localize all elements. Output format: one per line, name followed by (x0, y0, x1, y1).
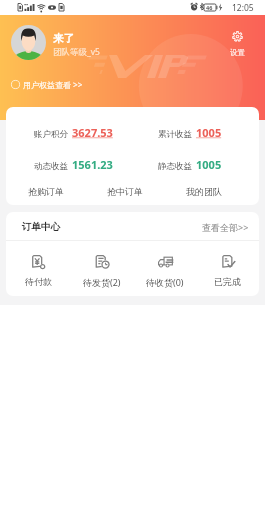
button[interactable]: 待收货(0) (133, 250, 196, 292)
staticText: 1005 (196, 157, 222, 172)
button[interactable]: 设置 (227, 31, 247, 57)
staticText: 待发货(2) (83, 276, 121, 288)
button[interactable]: 用户权益查看 >> (11, 79, 83, 90)
staticText: 动态收益 (34, 161, 68, 172)
staticText: 待付款 (25, 276, 52, 287)
button[interactable]: 抢中订单 (85, 183, 164, 199)
staticText: 抢中订单 (107, 186, 143, 197)
button[interactable]: 查看全部>> (200, 219, 251, 235)
staticText: 已完成 (214, 276, 241, 287)
staticText: 用户权益查看 >> (23, 79, 83, 90)
staticText: 团队等级_v5 (53, 46, 100, 58)
staticText: 待收货(0) (146, 276, 184, 288)
staticText: 我的团队 (186, 186, 222, 197)
staticText: 抢购订单 (28, 186, 64, 197)
staticText: 账户积分 (34, 129, 68, 140)
staticText: 订单中心 (22, 221, 60, 233)
button[interactable]: 待发货(2) (70, 250, 133, 292)
staticText: 1005 (196, 125, 222, 140)
staticText: 累计收益 (158, 129, 192, 140)
staticText: 1561.23 (72, 157, 113, 172)
staticText: 来了 (53, 32, 74, 45)
staticText: 46 (206, 4, 213, 11)
button[interactable]: 已完成 (196, 250, 259, 291)
button[interactable]: 静态收益 (158, 157, 222, 172)
button[interactable]: 累计收益 (158, 125, 222, 140)
staticText: 12:05 (232, 2, 254, 14)
staticText: 设置 (230, 48, 245, 57)
staticText: 3627.53 (72, 125, 113, 140)
button[interactable]: 账户积分 (34, 125, 113, 140)
staticText: 查看全部>> (202, 221, 249, 233)
button[interactable]: 动态收益 (34, 157, 113, 172)
button[interactable]: 头像 (11, 25, 46, 60)
button[interactable]: 我的团队 (164, 183, 243, 199)
staticText: 静态收益 (158, 161, 192, 172)
button[interactable]: 抢购订单 (6, 183, 85, 199)
button[interactable]: 待付款 (6, 250, 70, 291)
